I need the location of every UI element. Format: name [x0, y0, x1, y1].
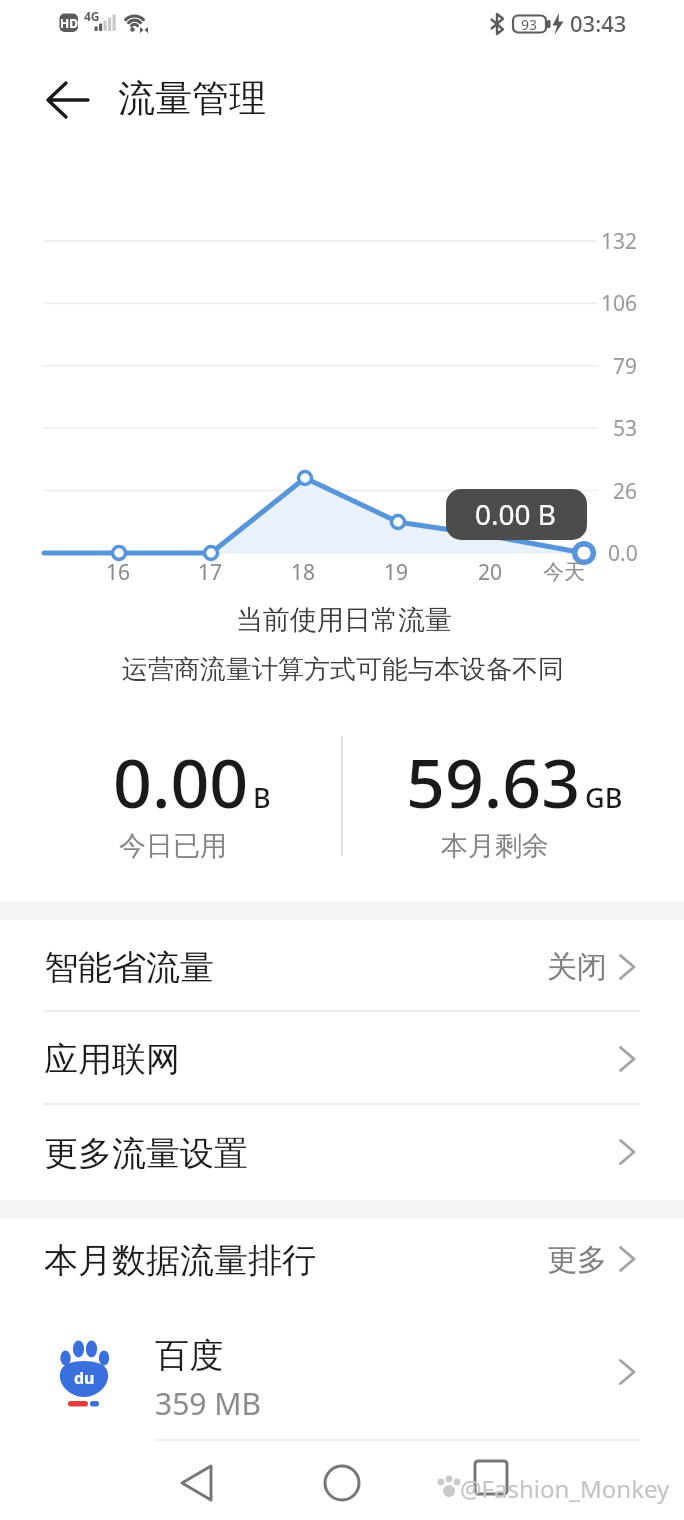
button[interactable]: 更多流量设置 — [0, 1105, 684, 1200]
staticText: 19 — [384, 558, 409, 587]
button[interactable] — [140, 1450, 255, 1516]
staticText: 0.00 — [113, 735, 249, 828]
staticText: 93 — [521, 15, 538, 34]
staticText: 流量管理 — [118, 75, 266, 122]
staticText: 本月剩余 — [441, 829, 549, 863]
button[interactable]: 百度 — [0, 1308, 684, 1440]
staticText: du — [74, 1367, 95, 1389]
staticText: 关闭 — [547, 948, 607, 986]
staticText: B — [253, 779, 271, 816]
staticText: 0.0 — [608, 539, 638, 568]
staticText: 百度 — [155, 1334, 223, 1377]
staticText: 4G — [84, 8, 100, 24]
staticText: 智能省流量 — [44, 946, 214, 989]
staticText: 03:43 — [570, 8, 627, 38]
button[interactable] — [30, 68, 105, 132]
staticText: 16 — [106, 558, 131, 587]
button[interactable]: 智能省流量 — [0, 920, 684, 1011]
button[interactable] — [285, 1450, 400, 1516]
staticText: 0.00 B — [475, 495, 557, 533]
button[interactable] — [430, 1450, 545, 1516]
button[interactable]: 应用联网 — [0, 1012, 684, 1104]
staticText: @Fashion_Monkey — [460, 1472, 670, 1505]
staticText: HD — [60, 15, 78, 31]
staticText: 17 — [198, 558, 223, 587]
button[interactable]: 本月数据流量排行 — [0, 1219, 684, 1302]
staticText: 132 — [601, 227, 638, 256]
staticText: 更多流量设置 — [44, 1132, 248, 1175]
staticText: 应用联网 — [44, 1038, 180, 1081]
staticText: 359 MB — [155, 1383, 261, 1424]
staticText: 53 — [613, 414, 638, 443]
staticText: 106 — [601, 289, 638, 318]
staticText: 79 — [613, 352, 638, 381]
staticText: 20 — [478, 558, 503, 587]
staticText: 运营商流量计算方式可能与本设备不同 — [122, 653, 564, 686]
staticText: 18 — [291, 558, 316, 587]
staticText: 本月数据流量排行 — [44, 1239, 316, 1282]
staticText: 59.63 — [406, 735, 581, 828]
staticText: 26 — [613, 477, 638, 506]
staticText: 当前使用日常流量 — [236, 603, 452, 637]
staticText: 更多 — [547, 1241, 607, 1279]
staticText: GB — [585, 779, 623, 816]
staticText: 今日已用 — [119, 829, 227, 863]
staticText: 今天 — [543, 559, 585, 585]
